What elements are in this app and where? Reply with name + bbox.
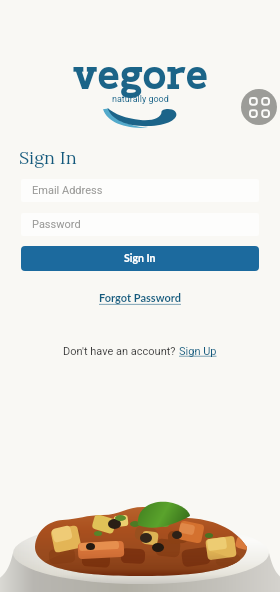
- button[interactable]: Email Address: [21, 179, 259, 202]
- staticText: Don't have an account?: [63, 345, 179, 358]
- button[interactable]: Password: [21, 213, 259, 236]
- button[interactable]: Forgot Password: [99, 291, 181, 304]
- button[interactable]: Sign In: [21, 246, 259, 271]
- staticText: naturally good: [112, 94, 169, 105]
- button[interactable]: Sign Up: [179, 345, 217, 358]
- staticText: Password: [32, 218, 81, 231]
- staticText: vegore: [73, 46, 208, 102]
- staticText: Sign In: [124, 252, 156, 265]
- button[interactable]: App grid: [241, 89, 277, 125]
- staticText: Sign In: [19, 146, 77, 169]
- staticText: Email Address: [32, 184, 103, 197]
